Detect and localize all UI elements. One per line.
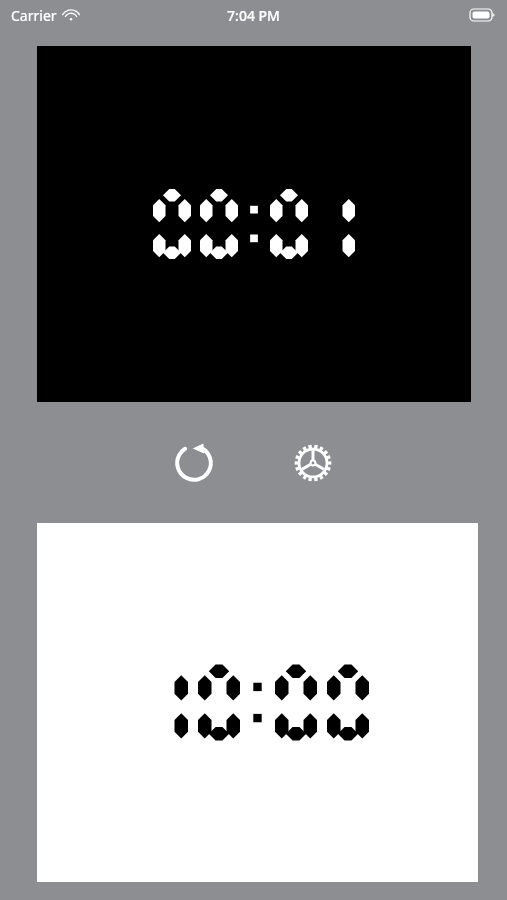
button[interactable]: [37, 46, 471, 402]
button[interactable]: Reset: [166, 435, 222, 491]
staticText: 7:04 PM: [227, 6, 280, 25]
button[interactable]: [37, 523, 478, 882]
staticText: Carrier: [11, 6, 57, 25]
button[interactable]: Settings: [285, 435, 341, 491]
